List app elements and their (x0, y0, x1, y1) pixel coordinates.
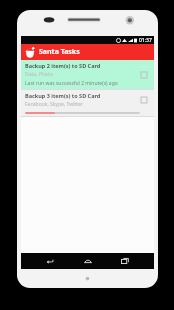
staticText: Facebook, Skype, Twitter (25, 101, 83, 108)
staticText: Last run was successful 2 minute(s) ago (25, 80, 118, 87)
button[interactable]: Home (79, 253, 97, 269)
staticText: Data, Photo (25, 71, 53, 78)
button[interactable]: Back (41, 253, 59, 269)
staticText: 01:37 (139, 37, 152, 44)
staticText: Santa Tasks (39, 47, 80, 57)
staticText: Backup 2 item(s) to SD Card (25, 62, 101, 69)
button[interactable]: Toggle task (138, 69, 150, 81)
button[interactable]: Backup 3 item(s) to SD Card (21, 90, 154, 110)
button[interactable]: Santa Tasks (21, 44, 154, 60)
staticText: Backup 3 item(s) to SD Card (25, 92, 101, 99)
button[interactable]: Backup 2 item(s) to SD Card (21, 60, 154, 89)
button[interactable]: Recent apps (116, 253, 134, 269)
other: Santa Tasks (25, 47, 35, 57)
button[interactable]: Toggle task (138, 94, 150, 106)
